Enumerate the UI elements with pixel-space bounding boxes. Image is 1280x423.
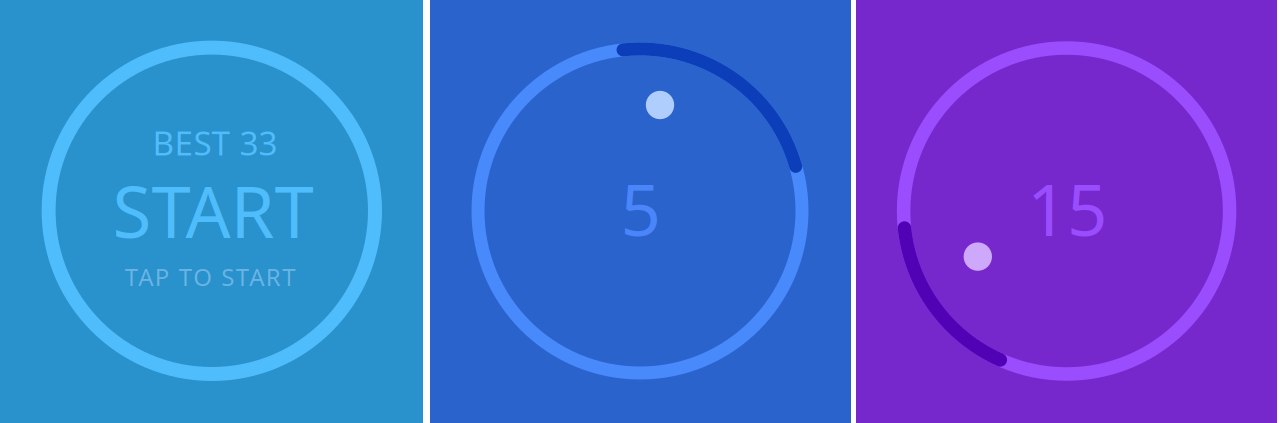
- staticText: START: [112, 164, 313, 257]
- button[interactable]: Tap to stop, 15 seconds left: [856, 0, 1277, 423]
- staticText: TAP TO START: [125, 261, 295, 293]
- button[interactable]: BEST 33: [0, 0, 423, 423]
- staticText: 15: [1027, 162, 1107, 255]
- staticText: 5: [620, 162, 660, 255]
- staticText: BEST 33: [152, 120, 277, 165]
- button[interactable]: Tap to stop, 5 seconds left: [430, 0, 851, 423]
